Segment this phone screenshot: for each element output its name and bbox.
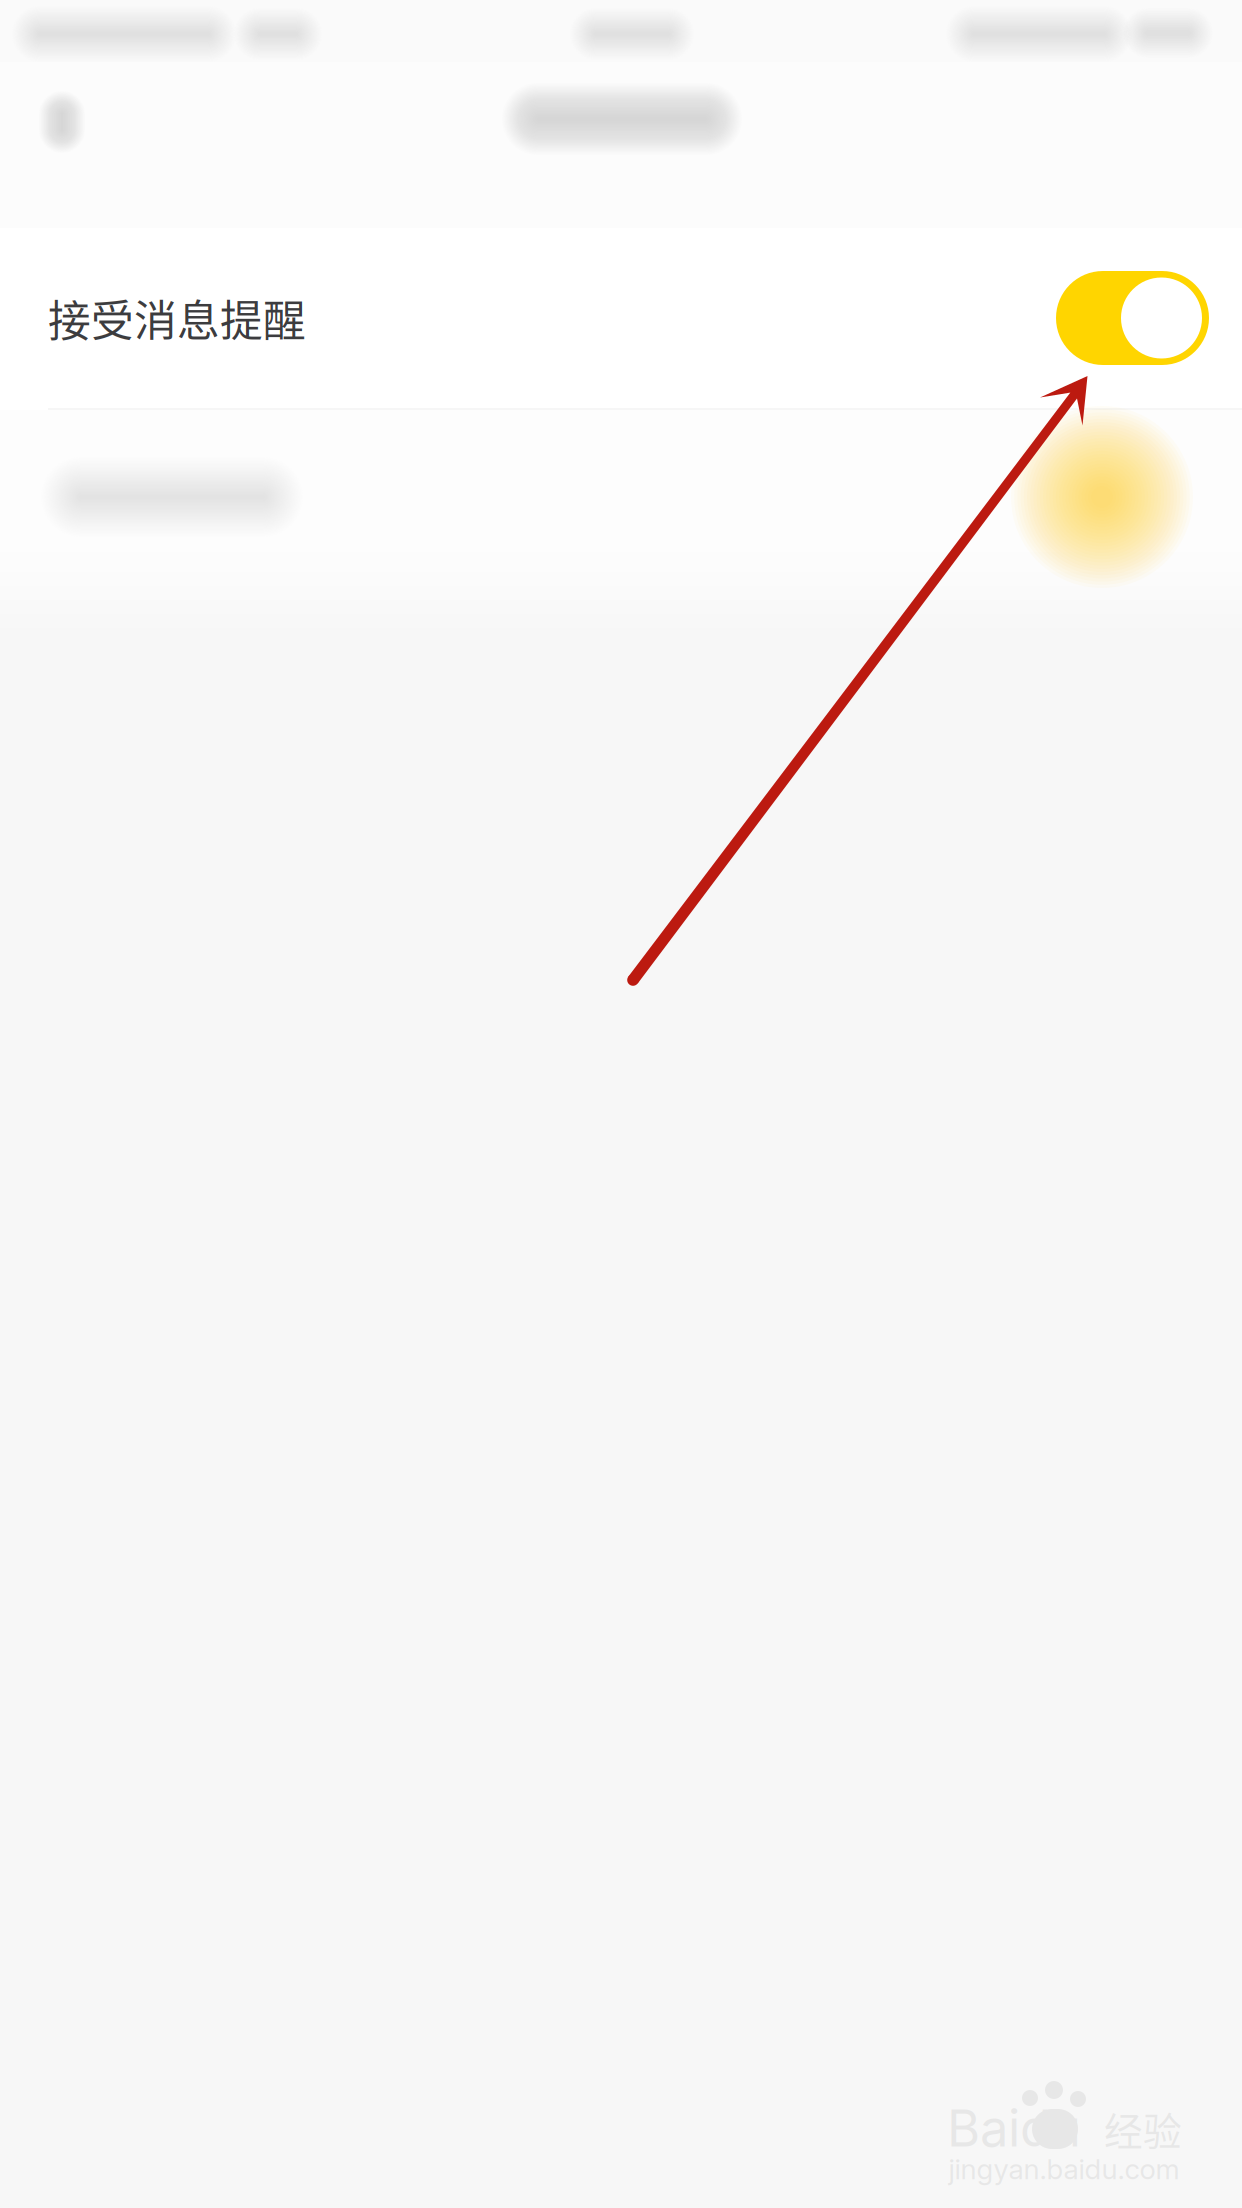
staticText: jingyan.baidu.com xyxy=(948,2152,1179,2186)
button[interactable]: 接受消息提醒 xyxy=(0,228,1242,408)
button[interactable]: Back xyxy=(2,62,122,182)
staticText: 经验 xyxy=(1104,2101,1182,2157)
staticText: 接受消息提醒 xyxy=(48,287,306,349)
staticText: Baidu xyxy=(947,2097,1081,2159)
